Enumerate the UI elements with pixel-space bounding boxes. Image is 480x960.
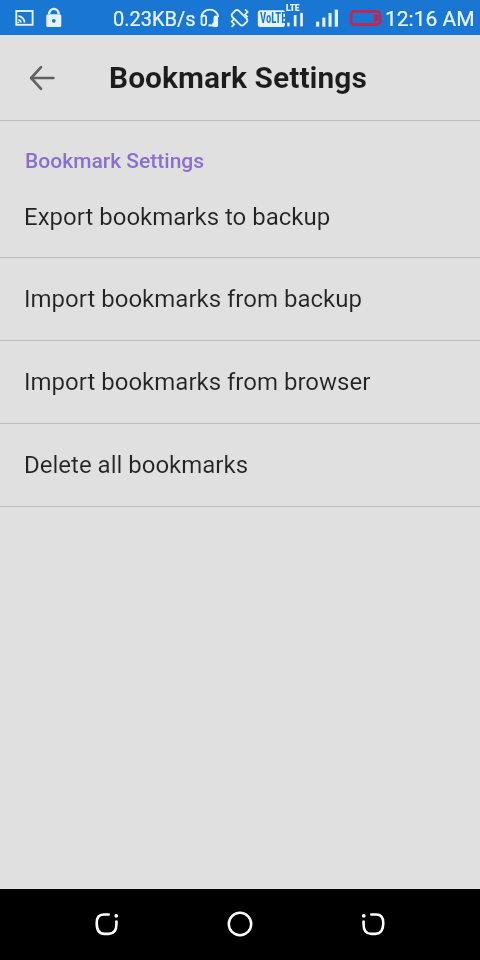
staticText: Export bookmarks to backup: [24, 203, 331, 231]
staticText: Import bookmarks from browser: [24, 368, 371, 396]
staticText: Import bookmarks from backup: [24, 285, 362, 313]
button[interactable]: Back: [81, 898, 133, 950]
button[interactable]: Import bookmarks from browser: [0, 341, 480, 423]
button[interactable]: Delete all bookmarks: [0, 424, 480, 506]
button[interactable]: Import bookmarks from backup: [0, 258, 480, 340]
staticText: Delete all bookmarks: [24, 451, 249, 479]
staticText: Bookmark Settings: [109, 60, 367, 95]
staticText: VoLTE: [260, 10, 287, 26]
staticText: LTE: [286, 2, 300, 13]
staticText: Bookmark Settings: [25, 149, 205, 174]
button[interactable]: Export bookmarks to backup: [0, 181, 480, 253]
button[interactable]: Home: [214, 898, 266, 950]
button[interactable]: Back: [13, 49, 71, 107]
button[interactable]: Recents: [347, 898, 399, 950]
staticText: 0.23KB/s: [113, 7, 196, 30]
staticText: 12:16 AM: [385, 7, 475, 32]
